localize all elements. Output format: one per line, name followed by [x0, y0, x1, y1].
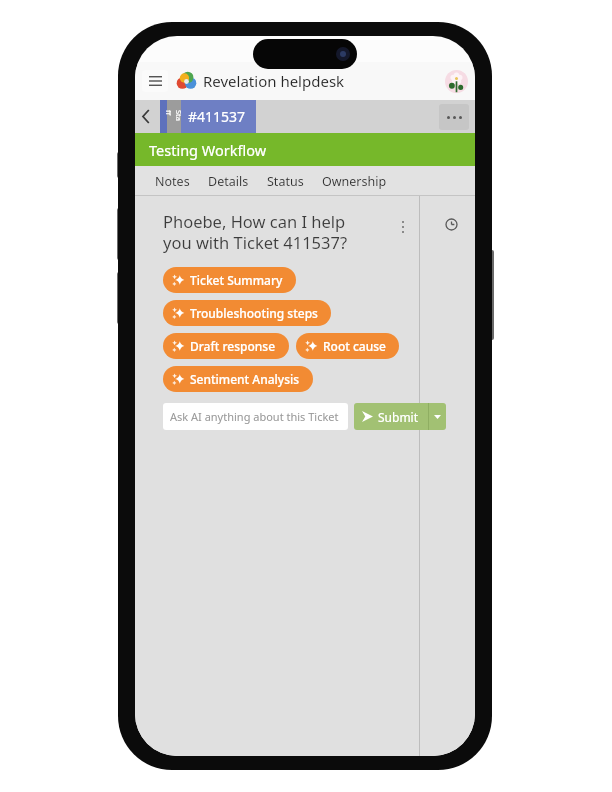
- button[interactable]: Root cause: [296, 333, 399, 359]
- button[interactable]: Status: [258, 166, 313, 196]
- staticText: #411537: [188, 107, 246, 126]
- button[interactable]: #411537: [181, 100, 256, 133]
- button[interactable]: Menu: [142, 70, 168, 92]
- button[interactable]: Notes: [146, 166, 199, 196]
- button[interactable]: Troubleshooting steps: [163, 300, 331, 326]
- button[interactable]: Details: [199, 166, 258, 196]
- staticText: Ticket Summary: [190, 272, 283, 288]
- staticText: Root cause: [323, 338, 386, 354]
- button[interactable]: Ownership: [313, 166, 396, 196]
- staticText: Ask AI anything about this Ticket: [170, 409, 339, 424]
- staticText: Draft response: [190, 338, 276, 354]
- button[interactable]: Sentiment Analysis: [163, 366, 313, 392]
- button[interactable]: Ticket Summary: [163, 267, 296, 293]
- button[interactable]: Submit: [354, 403, 428, 430]
- staticText: Details: [208, 173, 249, 190]
- button[interactable]: Draft response: [163, 333, 289, 359]
- staticText: Revelation helpdesk: [203, 71, 345, 91]
- staticText: Testing Workflow: [149, 140, 267, 160]
- button[interactable]: Staff: [167, 100, 181, 133]
- button[interactable]: More: [439, 104, 469, 130]
- button[interactable]: Profile: [445, 70, 468, 93]
- staticText: Phoebe, How can I help you with Ticket 4…: [163, 210, 393, 254]
- button[interactable]: Back: [135, 100, 157, 133]
- button[interactable]: Submit options: [429, 403, 446, 430]
- button[interactable]: Ask AI anything about this Ticket: [163, 403, 348, 430]
- staticText: Notes: [155, 173, 190, 190]
- staticText: Staff: [164, 110, 184, 124]
- staticText: Submit: [378, 409, 419, 425]
- button[interactable]: More options: [393, 210, 413, 244]
- staticText: Sentiment Analysis: [190, 371, 300, 387]
- staticText: Ownership: [322, 173, 387, 190]
- staticText: Troubleshooting steps: [190, 305, 318, 321]
- staticText: Status: [267, 173, 304, 190]
- button[interactable]: History: [437, 210, 465, 238]
